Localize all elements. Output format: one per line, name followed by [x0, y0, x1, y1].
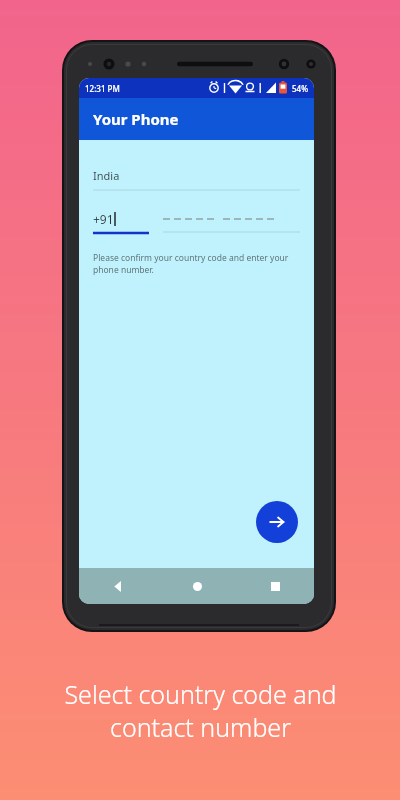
button[interactable]: +91: [93, 211, 300, 234]
button[interactable]: Next: [256, 501, 298, 543]
staticText: +91: [93, 211, 114, 227]
staticText: Select country code and contact number: [64, 677, 337, 744]
staticText: Your Phone: [93, 109, 179, 129]
button[interactable]: Home: [158, 568, 236, 604]
staticText: 54%: [292, 83, 308, 94]
staticText: 12:31 PM: [85, 83, 120, 94]
staticText: Please confirm your country code and ent…: [93, 252, 289, 276]
button[interactable]: India: [93, 160, 300, 190]
button[interactable]: Back: [79, 568, 158, 604]
button[interactable]: Recents: [236, 568, 314, 604]
staticText: India: [93, 168, 120, 183]
